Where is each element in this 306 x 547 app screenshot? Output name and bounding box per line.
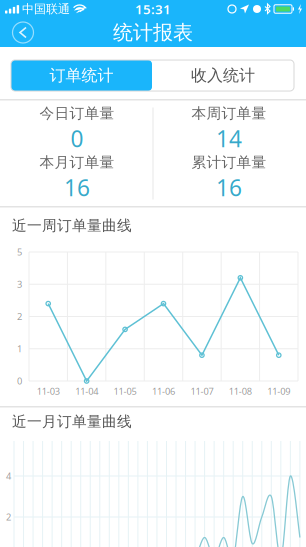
staticText: 1 xyxy=(17,343,22,355)
staticText: 近一周订单量曲线 xyxy=(12,216,132,234)
staticText: 2 xyxy=(17,310,22,323)
staticText: 11-09 xyxy=(267,385,290,397)
button[interactable]: Back xyxy=(4,18,42,47)
staticText: 3 xyxy=(17,278,22,290)
staticText: 4 xyxy=(6,470,11,482)
staticText: 本月订单量 xyxy=(39,153,114,171)
staticText: 累计订单量 xyxy=(191,153,266,171)
staticText: 11-04 xyxy=(75,385,98,397)
staticText: 2 xyxy=(6,511,11,523)
staticText: 11-03 xyxy=(37,385,60,397)
staticText: 今日订单量 xyxy=(39,104,114,122)
staticText: 5 xyxy=(17,246,22,258)
button[interactable]: 订单统计 xyxy=(11,60,152,91)
staticText: 0 xyxy=(70,123,83,154)
staticText: 收入统计 xyxy=(191,66,255,85)
staticText: 近一月订单量曲线 xyxy=(12,412,132,430)
button[interactable]: 收入统计 xyxy=(152,60,294,91)
staticText: 11-08 xyxy=(229,385,252,397)
staticText: 中国联通 xyxy=(22,2,70,16)
staticText: 16 xyxy=(216,172,242,203)
staticText: 统计报表 xyxy=(113,20,193,45)
staticText: 16 xyxy=(64,172,90,203)
staticText: 11-05 xyxy=(114,385,137,397)
staticText: 0 xyxy=(17,375,22,387)
staticText: 15:31 xyxy=(135,0,171,18)
staticText: 11-06 xyxy=(152,385,175,397)
staticText: 14 xyxy=(216,123,242,154)
staticText: 本周订单量 xyxy=(191,104,266,122)
staticText: 11-07 xyxy=(190,385,213,397)
staticText: 订单统计 xyxy=(49,66,113,85)
